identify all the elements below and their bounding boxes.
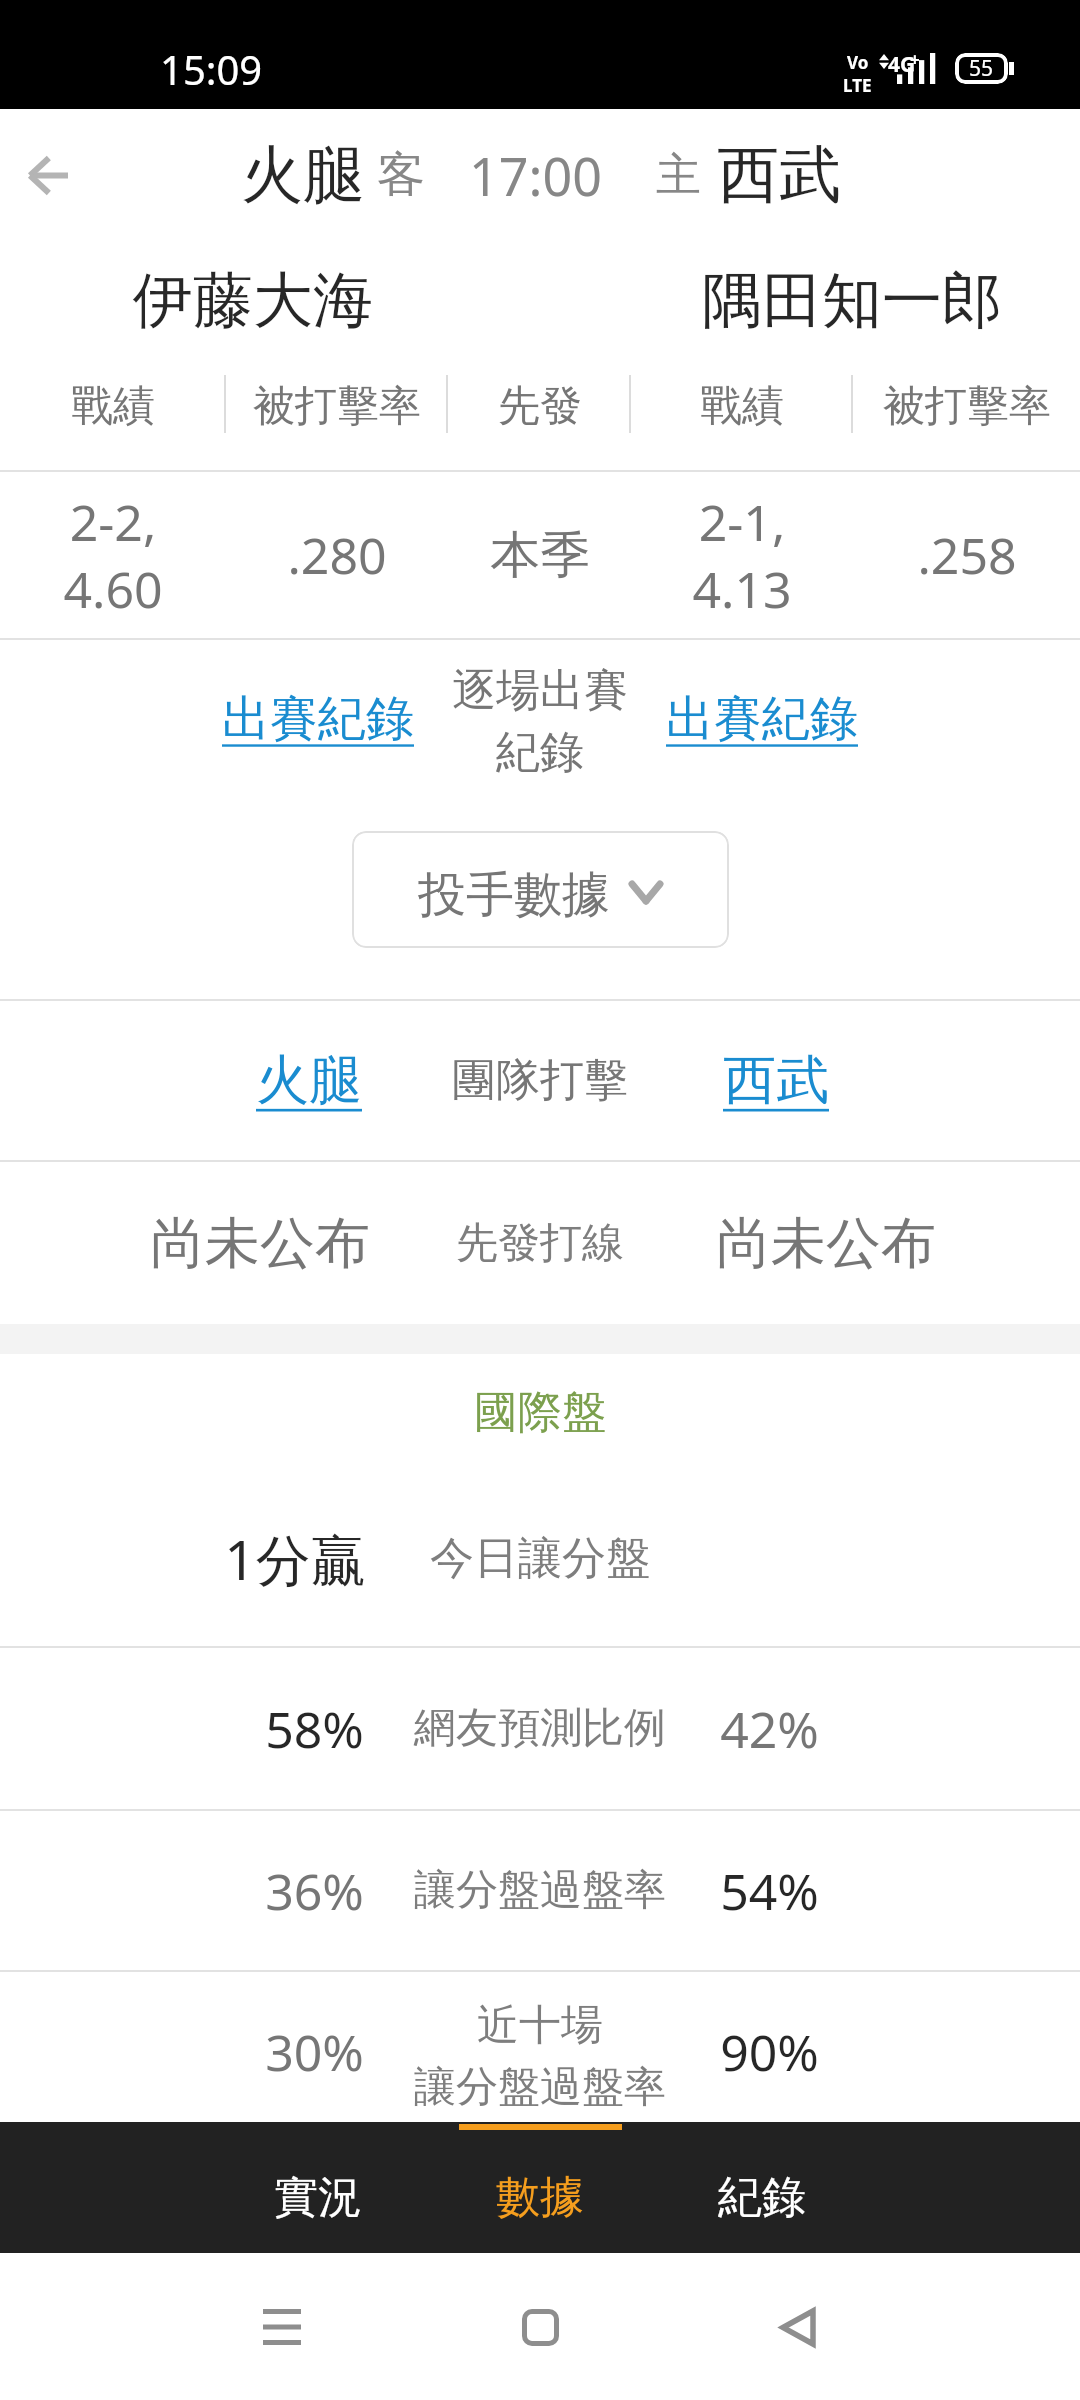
button[interactable]: Back: [750, 2279, 846, 2375]
staticText: 17:00: [469, 140, 602, 211]
staticText: LTE: [843, 74, 872, 97]
staticText: 尚未公布: [716, 1209, 936, 1278]
staticText: 今日讓分盤: [430, 1531, 650, 1586]
staticText: 網友預測比例: [414, 1702, 666, 1755]
staticText: 36%: [265, 1857, 364, 1925]
button[interactable]: 紀錄: [651, 2122, 873, 2253]
staticText: 被打擊率: [253, 380, 421, 433]
staticText: .258: [917, 521, 1017, 589]
staticText: 客: [377, 145, 425, 205]
staticText: 出賽紀錄: [666, 689, 858, 749]
staticText: 西武: [717, 136, 841, 214]
staticText: 54%: [720, 1857, 819, 1925]
staticText: 先發: [498, 380, 582, 433]
button[interactable]: 數據: [429, 2122, 651, 2253]
staticText: 火腿: [256, 1047, 362, 1114]
staticText: 投手數據: [418, 865, 610, 925]
staticText: 42%: [720, 1695, 819, 1763]
staticText: 4G: [888, 50, 916, 79]
staticText: 伊藤大海: [133, 263, 373, 339]
staticText: 數據: [496, 2170, 584, 2225]
button[interactable]: 火腿: [252, 1035, 366, 1126]
staticText: 55: [969, 54, 994, 83]
staticText: .280: [287, 521, 387, 589]
staticText: 團隊打擊: [452, 1053, 628, 1108]
staticText: 被打擊率: [883, 380, 1051, 433]
staticText: Vo: [847, 51, 869, 74]
staticText: 西武: [723, 1047, 829, 1114]
staticText: 火腿: [241, 136, 365, 214]
staticText: 戰績: [700, 380, 784, 433]
staticText: 30%: [265, 2018, 364, 2086]
staticText: 2-2, 4.60: [63, 488, 163, 622]
staticText: 實況: [274, 2170, 362, 2225]
button[interactable]: 投手數據: [352, 831, 729, 948]
staticText: 58%: [265, 1695, 364, 1763]
staticText: +: [910, 48, 920, 71]
staticText: 國際盤: [474, 1385, 606, 1440]
button[interactable]: 出賽紀錄: [214, 677, 414, 761]
staticText: 15:09: [160, 42, 263, 96]
staticText: 本季: [490, 524, 590, 587]
button[interactable]: Back: [4, 131, 92, 219]
button[interactable]: 出賽紀錄: [666, 677, 862, 761]
staticText: 紀錄: [718, 2170, 806, 2225]
button[interactable]: Recent apps: [234, 2279, 330, 2375]
staticText: 1分贏: [224, 1521, 366, 1596]
staticText: 戰績: [71, 380, 155, 433]
staticText: 隅田知一郎: [702, 263, 1002, 339]
staticText: 近十場 讓分盤過盤率: [414, 1999, 666, 2114]
staticText: 90%: [720, 2018, 819, 2086]
button[interactable]: Home: [492, 2279, 588, 2375]
staticText: 2-1, 4.13: [692, 488, 792, 622]
staticText: 逐場出賽 紀錄: [452, 663, 628, 780]
button[interactable]: 西武: [719, 1035, 833, 1126]
staticText: 先發打線: [456, 1217, 624, 1270]
staticText: 出賽紀錄: [222, 689, 414, 749]
staticText: 主: [656, 147, 701, 204]
staticText: 尚未公布: [150, 1209, 370, 1278]
staticText: 讓分盤過盤率: [414, 1864, 666, 1917]
button[interactable]: 實況: [207, 2122, 429, 2253]
